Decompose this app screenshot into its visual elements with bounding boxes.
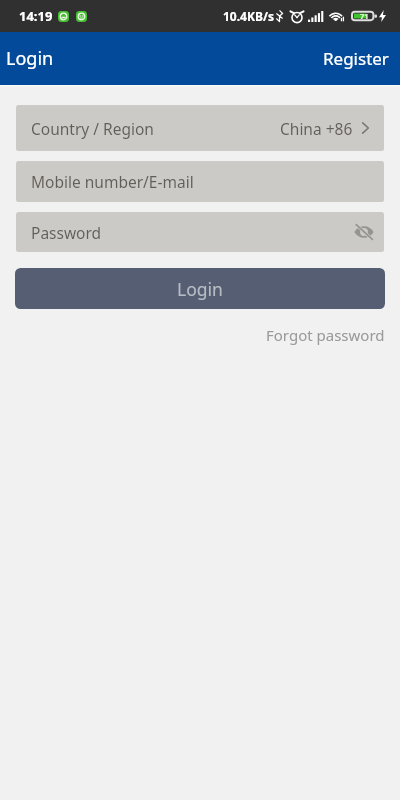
button[interactable]: Password (16, 212, 384, 252)
staticText: 14:19 (19, 7, 53, 25)
button[interactable]: Register (313, 41, 400, 76)
button[interactable]: Country / Region (16, 105, 384, 151)
staticText: 71 (360, 11, 369, 21)
button[interactable]: Forgot password (262, 322, 389, 348)
staticText: Forgot password (266, 325, 385, 345)
staticText: Login (6, 46, 54, 71)
staticText: China +86 (280, 118, 353, 139)
button[interactable]: Login (15, 268, 385, 309)
button[interactable]: Show password (354, 224, 374, 240)
staticText: Country / Region (31, 118, 154, 139)
staticText: Login (177, 277, 223, 301)
staticText: Password (31, 222, 102, 243)
staticText: Mobile number/E-mail (31, 171, 194, 192)
button[interactable]: Login (0, 40, 64, 77)
staticText: Register (323, 47, 389, 70)
button[interactable]: Mobile number/E-mail (16, 161, 384, 202)
staticText: 10.4KB/s (223, 8, 274, 24)
